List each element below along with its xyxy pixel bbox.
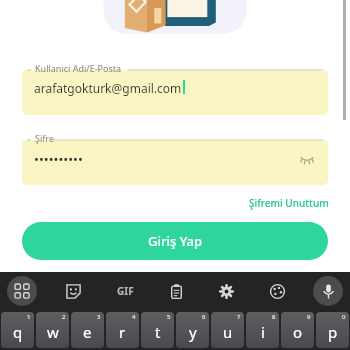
button[interactable]: 8 [246,312,279,348]
button[interactable]: 2 [36,312,69,348]
staticText: 4 [132,313,136,321]
staticText: i [261,322,265,342]
staticText: Giriş Yap [148,232,203,250]
staticText: t [155,322,161,342]
staticText: y [189,322,197,342]
button[interactable]: Tema [263,277,291,305]
button[interactable]: Ayarlar [212,277,240,305]
button[interactable]: 5 [141,312,174,348]
button[interactable]: 4 [106,312,139,348]
button[interactable]: GIF [110,276,140,306]
staticText: 0 [342,313,346,321]
button[interactable]: 0 [316,312,349,348]
staticText: 1 [27,313,31,321]
button[interactable]: 3 [71,312,104,348]
staticText: u [223,322,233,342]
staticText: Kullanıcı Adı/E-Posta [35,62,122,74]
staticText: 7 [237,313,241,321]
button[interactable]: Giriş Yap [22,222,328,260]
button[interactable]: 1 [1,312,34,348]
staticText: e [83,322,92,342]
staticText: q [13,322,23,342]
button[interactable]: Şifremi Unuttum [246,193,332,213]
staticText: 5 [167,313,171,321]
button[interactable]: Şifre [22,133,328,185]
button[interactable]: 7 [211,312,244,348]
button[interactable]: Şifreyi göster [298,150,316,168]
staticText: •••••••••• [34,150,83,168]
staticText: 8 [272,313,276,321]
staticText: 6 [202,313,206,321]
staticText: Şifre [35,132,54,144]
button[interactable]: Çıkartmalar [59,277,87,305]
staticText: GIF [117,284,134,298]
staticText: o [293,322,303,342]
staticText: w [47,322,59,342]
staticText: arafatgokturk@gmail.com [34,80,182,96]
staticText: 3 [97,313,101,321]
staticText: Şifremi Unuttum [249,196,329,210]
button[interactable]: 6 [176,312,209,348]
button[interactable]: Pano [162,277,190,305]
staticText: 9 [307,313,311,321]
staticText: p [328,322,338,342]
staticText: r [119,322,126,342]
button[interactable]: 9 [281,312,314,348]
button[interactable]: Sesli giriş [313,276,343,306]
button[interactable]: Kullanıcı Adı/E-Posta [22,63,328,115]
staticText: 2 [62,313,66,321]
button[interactable]: Uygulamalar [7,276,37,306]
